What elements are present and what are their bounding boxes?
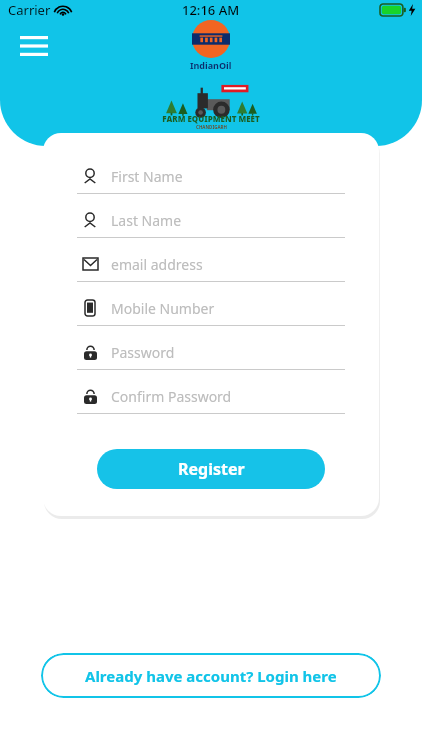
button[interactable]: Password — [77, 335, 345, 379]
staticText: Carrier — [8, 1, 51, 19]
button[interactable]: Confirm Password — [77, 379, 345, 423]
staticText: Register — [178, 458, 245, 480]
staticText: FARM EQUIPMENT MEET — [162, 113, 260, 124]
staticText: CHANDIGARH — [196, 124, 227, 130]
staticText: Already have account? Login here — [85, 666, 337, 686]
button[interactable]: Menu — [12, 24, 56, 68]
button[interactable]: Mobile Number — [77, 291, 345, 335]
button[interactable]: Register — [97, 449, 325, 489]
button[interactable]: Last Name — [77, 203, 345, 247]
button[interactable]: First Name — [77, 159, 345, 203]
staticText: Password — [111, 343, 175, 362]
staticText: First Name — [111, 167, 183, 186]
staticText: IndianOil — [190, 59, 232, 71]
staticText: Mobile Number — [111, 299, 215, 318]
staticText: 12:16 AM — [182, 1, 240, 19]
button[interactable]: email address — [77, 247, 345, 291]
staticText: Confirm Password — [111, 387, 232, 406]
staticText: Last Name — [111, 211, 182, 230]
staticText: email address — [111, 255, 203, 274]
button[interactable]: Already have account? Login here — [41, 653, 381, 698]
